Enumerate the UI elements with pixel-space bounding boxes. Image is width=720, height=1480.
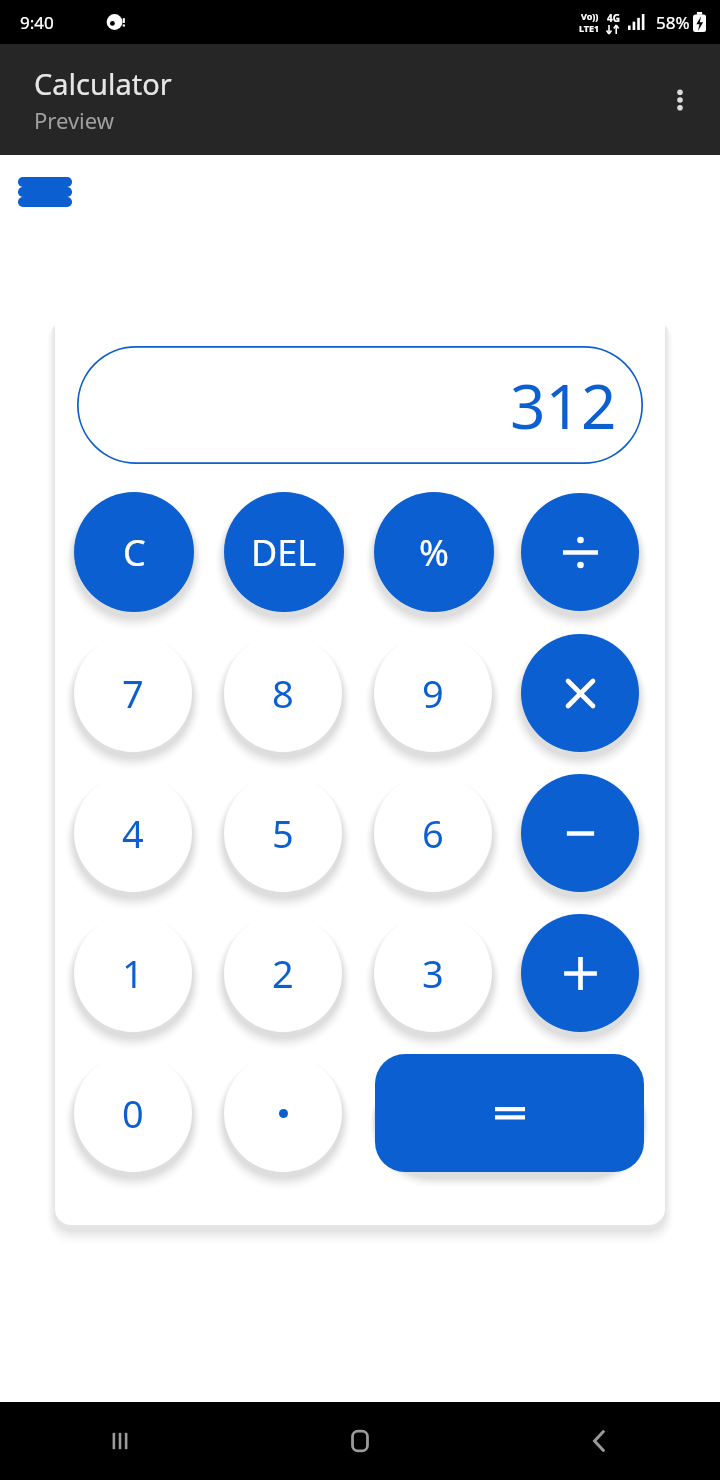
button[interactable]: 3 [374, 914, 492, 1032]
staticText: 4G [607, 11, 620, 25]
staticText: 9:40 [20, 11, 54, 34]
button[interactable]: 312 [77, 346, 643, 464]
staticText: 3 [422, 947, 444, 999]
button[interactable]: C [74, 492, 194, 612]
button[interactable]: Multiply [521, 634, 639, 752]
button[interactable]: Home [240, 1402, 480, 1480]
button[interactable]: Divide [521, 493, 639, 611]
staticText: 2 [272, 947, 294, 999]
staticText: Vo)) [581, 10, 599, 22]
staticText: 58% [656, 11, 690, 34]
button[interactable]: 5 [224, 774, 342, 892]
staticText: 5 [272, 807, 294, 859]
staticText: 0 [122, 1087, 144, 1139]
staticText: 7 [122, 667, 144, 719]
staticText: 1 [122, 947, 144, 999]
staticText: Preview [34, 105, 115, 135]
staticText: C [123, 528, 146, 577]
button[interactable]: 9 [374, 634, 492, 752]
staticText: DEL [251, 528, 317, 577]
button[interactable]: More options [652, 72, 708, 128]
staticText: 9 [422, 667, 444, 719]
staticText: Calculator [34, 64, 172, 103]
staticText: 8 [272, 667, 294, 719]
button[interactable]: Add [521, 914, 639, 1032]
staticText: LTE1 [579, 22, 600, 34]
button[interactable]: Back [480, 1402, 720, 1480]
button[interactable]: 4 [74, 774, 192, 892]
button[interactable]: 6 [374, 774, 492, 892]
staticText: % [419, 528, 449, 577]
button[interactable]: Menu [18, 177, 72, 207]
staticText: 6 [422, 807, 444, 859]
staticText: 4 [122, 807, 144, 859]
button[interactable]: Decimal point [224, 1054, 342, 1172]
button[interactable]: 2 [224, 914, 342, 1032]
button[interactable]: % [374, 492, 494, 612]
button[interactable]: Recents [0, 1402, 240, 1480]
button[interactable]: 1 [74, 914, 192, 1032]
button[interactable]: DEL [224, 492, 344, 612]
button[interactable]: Equals [375, 1054, 644, 1172]
staticText: 312 [510, 363, 617, 447]
button[interactable]: 8 [224, 634, 342, 752]
button[interactable]: 0 [74, 1054, 192, 1172]
button[interactable]: Subtract [521, 774, 639, 892]
button[interactable]: 7 [74, 634, 192, 752]
